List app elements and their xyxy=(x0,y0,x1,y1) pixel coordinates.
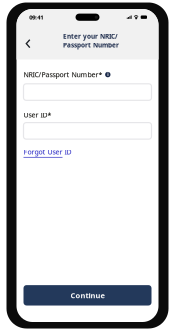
button[interactable]: Continue xyxy=(23,285,151,305)
staticText: NRIC/Passport Number* xyxy=(23,70,102,79)
staticText: Forgot User ID xyxy=(23,147,71,156)
button[interactable]: Forgot User ID xyxy=(23,147,71,158)
staticText: Continue xyxy=(70,290,104,300)
staticText: 09:41 xyxy=(29,13,43,21)
staticText: Enter your NRIC/ Passport Number xyxy=(63,32,119,49)
staticText: i xyxy=(107,71,108,78)
button[interactable]: Back xyxy=(16,34,37,53)
button[interactable]: More information xyxy=(105,72,110,77)
staticText: User ID* xyxy=(23,110,51,119)
